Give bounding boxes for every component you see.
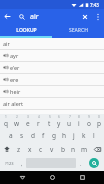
button[interactable]: s bbox=[16, 128, 27, 142]
button[interactable]: 5 bbox=[44, 115, 54, 128]
staticText: l bbox=[93, 131, 95, 140]
button[interactable]: SEARCH bbox=[52, 24, 104, 36]
staticText: a bbox=[9, 131, 13, 140]
button[interactable]: . bbox=[76, 156, 85, 170]
button[interactable]: air alert bbox=[0, 98, 104, 110]
button[interactable]: h bbox=[59, 128, 69, 142]
staticText: SEARCH bbox=[69, 27, 88, 34]
button[interactable]: Back bbox=[0, 9, 15, 24]
button[interactable]: g bbox=[49, 128, 59, 142]
staticText: j bbox=[73, 131, 75, 140]
button[interactable]: Shift bbox=[0, 142, 13, 156]
staticText: air alert bbox=[3, 100, 24, 107]
staticText: b bbox=[61, 145, 65, 154]
staticText: LOOKUP bbox=[16, 27, 37, 34]
staticText: 7 bbox=[69, 115, 71, 119]
button[interactable]: 8 bbox=[74, 115, 84, 128]
staticText: 4 bbox=[38, 115, 40, 119]
staticText: air bbox=[30, 12, 39, 22]
staticText: x bbox=[28, 145, 32, 154]
button[interactable]: LOOKUP bbox=[0, 24, 52, 36]
button[interactable]: 2 bbox=[11, 115, 22, 128]
staticText: heir bbox=[10, 88, 21, 95]
button[interactable]: m bbox=[79, 142, 90, 156]
staticText: 8 bbox=[78, 115, 80, 119]
staticText: . bbox=[80, 160, 82, 167]
staticText: m bbox=[81, 145, 88, 154]
button[interactable]: 4 bbox=[33, 115, 44, 128]
button[interactable]: air bbox=[0, 38, 104, 50]
staticText: y bbox=[57, 119, 61, 128]
staticText: z bbox=[17, 145, 21, 154]
button[interactable]: 1 bbox=[0, 115, 11, 128]
staticText: 1 bbox=[5, 115, 7, 119]
staticText: e bbox=[26, 119, 30, 128]
button[interactable]: ?123 bbox=[1, 156, 17, 170]
staticText: f bbox=[42, 131, 45, 140]
staticText: 6 bbox=[58, 115, 60, 119]
staticText: air bbox=[3, 40, 10, 47]
button[interactable]: c bbox=[35, 142, 46, 156]
staticText: t bbox=[48, 119, 51, 128]
button[interactable]: , bbox=[17, 156, 26, 170]
staticText: d bbox=[31, 131, 35, 140]
button[interactable]: x bbox=[24, 142, 35, 156]
staticText: ?123 bbox=[5, 161, 14, 166]
button[interactable]: More options bbox=[92, 11, 104, 23]
button[interactable]: 0 bbox=[94, 115, 104, 128]
staticText: g bbox=[52, 131, 56, 140]
staticText: u bbox=[67, 119, 72, 128]
staticText: n bbox=[71, 145, 76, 154]
staticText: ayr bbox=[10, 52, 19, 59]
button[interactable]: e'er bbox=[0, 62, 104, 74]
button[interactable]: Back bbox=[14, 171, 30, 184]
button[interactable]: b bbox=[57, 142, 68, 156]
button[interactable]: Search bbox=[89, 158, 99, 168]
staticText: i bbox=[78, 119, 80, 128]
button[interactable]: d bbox=[27, 128, 38, 142]
button[interactable]: 3 bbox=[22, 115, 33, 128]
staticText: 3 bbox=[27, 115, 29, 119]
button[interactable]: Search bbox=[15, 10, 28, 23]
button[interactable]: Home bbox=[44, 171, 60, 184]
staticText: , bbox=[21, 160, 23, 167]
button[interactable]: 6 bbox=[54, 115, 64, 128]
staticText: q bbox=[4, 119, 8, 128]
button[interactable]: 7 bbox=[64, 115, 74, 128]
staticText: ere bbox=[10, 76, 19, 83]
button[interactable]: z bbox=[13, 142, 24, 156]
staticText: s bbox=[20, 131, 24, 140]
button[interactable]: k bbox=[79, 128, 89, 142]
button[interactable]: j bbox=[69, 128, 79, 142]
button[interactable]: f bbox=[38, 128, 49, 142]
button[interactable]: heir bbox=[0, 86, 104, 98]
button[interactable]: Backspace bbox=[90, 142, 104, 156]
staticText: 5 bbox=[49, 115, 51, 119]
staticText: k bbox=[82, 131, 86, 140]
staticText: v bbox=[50, 145, 54, 154]
staticText: 2 bbox=[16, 115, 18, 119]
button[interactable]: Recents bbox=[74, 171, 90, 184]
button[interactable]: l bbox=[89, 128, 99, 142]
staticText: e'er bbox=[10, 64, 20, 71]
button[interactable]: Clear bbox=[78, 10, 92, 24]
button[interactable]: 9 bbox=[84, 115, 94, 128]
button[interactable]: a bbox=[5, 128, 16, 142]
button[interactable]: v bbox=[46, 142, 57, 156]
staticText: r bbox=[37, 119, 40, 128]
button[interactable]: n bbox=[68, 142, 79, 156]
staticText: 9 bbox=[88, 115, 90, 119]
staticText: 0 bbox=[98, 115, 100, 119]
staticText: w bbox=[14, 119, 20, 128]
staticText: c bbox=[39, 145, 43, 154]
staticText: 7:43 bbox=[90, 2, 99, 8]
button[interactable]: ayr bbox=[0, 50, 104, 62]
staticText: p bbox=[97, 119, 101, 128]
staticText: h bbox=[62, 131, 67, 140]
button[interactable]: ere bbox=[0, 74, 104, 86]
staticText: o bbox=[87, 119, 91, 128]
